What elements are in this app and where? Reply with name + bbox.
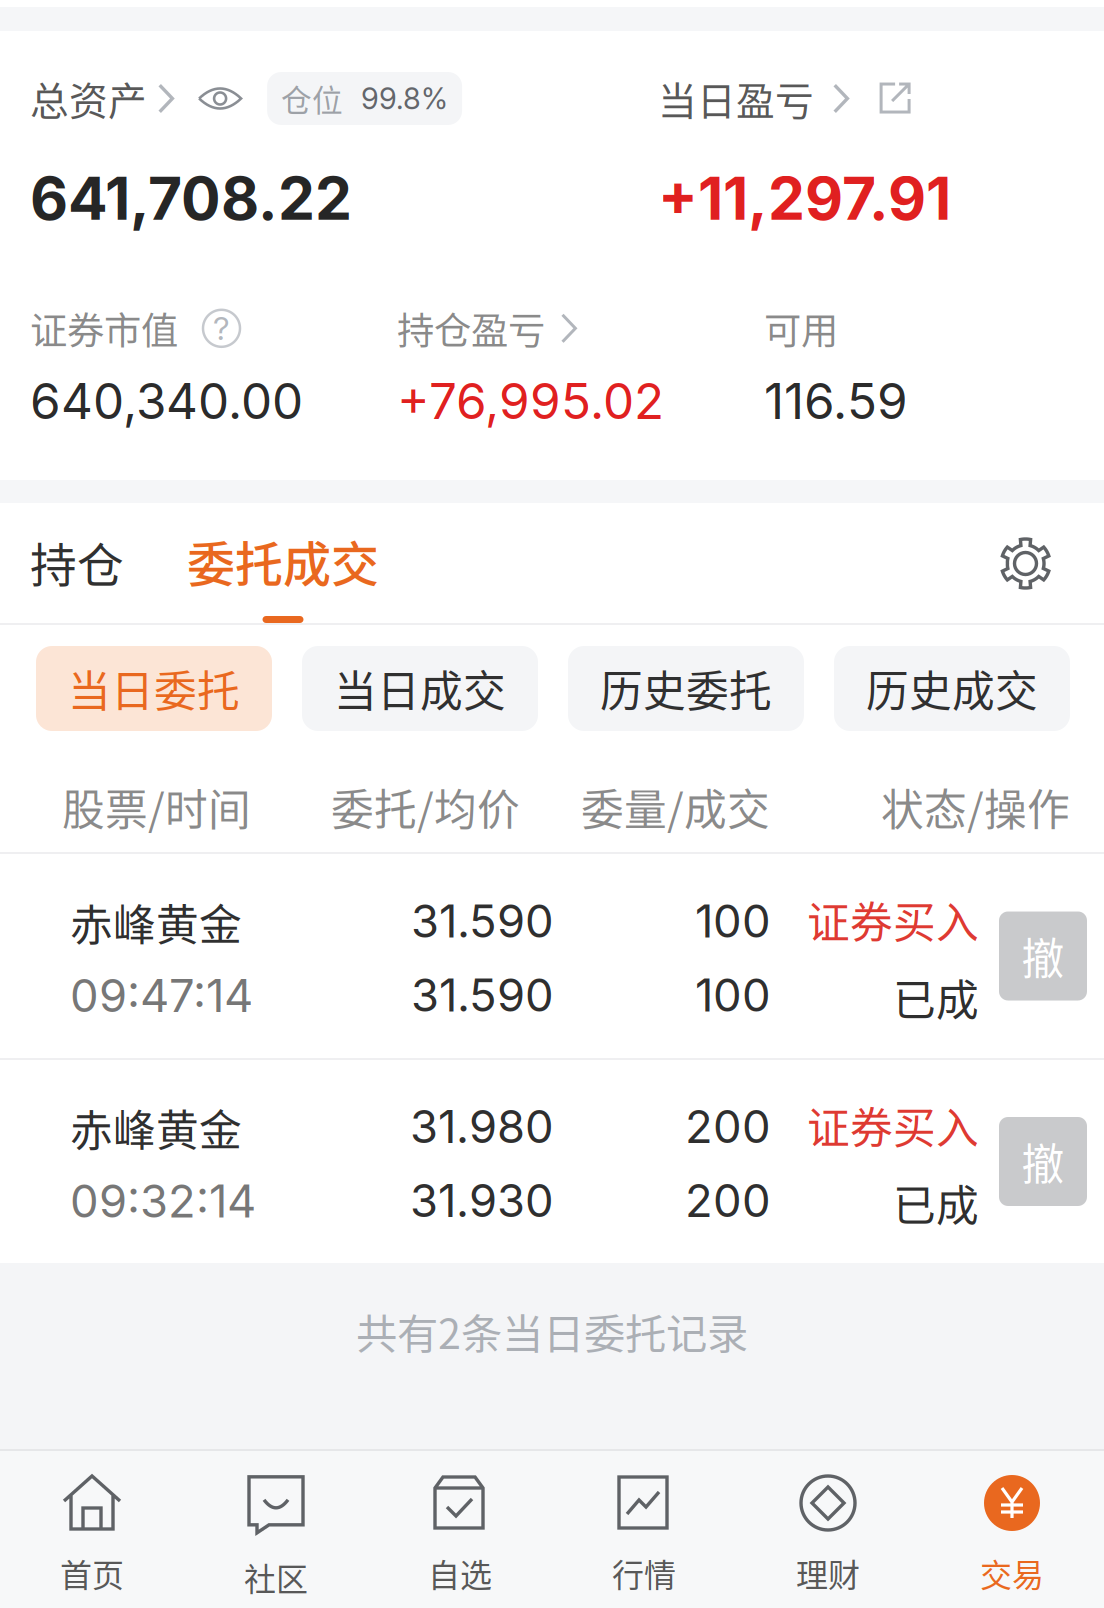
staticText: 赤峰黄金: [70, 891, 242, 953]
staticText: 共有2条当日委托记录: [356, 1301, 748, 1361]
button[interactable]: 自选: [368, 1451, 552, 1608]
staticText: 仓位: [281, 76, 343, 121]
staticText: 持仓: [30, 528, 124, 596]
staticText: 历史委托: [600, 658, 772, 719]
staticText: 自选: [428, 1550, 492, 1596]
button[interactable]: 社区: [184, 1451, 368, 1608]
staticText: +11,297.91: [658, 163, 951, 234]
button[interactable]: 行情: [552, 1451, 736, 1608]
button[interactable]: 委托成交: [187, 503, 379, 623]
button[interactable]: 当日委托: [36, 646, 272, 731]
staticText: 委托/均价: [331, 776, 520, 838]
staticText: 116.59: [764, 371, 908, 431]
staticText: 交易: [980, 1550, 1044, 1596]
staticText: 证券市值: [30, 301, 178, 355]
staticText: 100: [695, 967, 771, 1022]
staticText: 撤: [1021, 925, 1064, 987]
button[interactable]: 当日成交: [302, 646, 538, 731]
staticText: ?: [213, 309, 230, 348]
button[interactable]: 持仓: [30, 503, 124, 623]
staticText: 09:32:14: [70, 1173, 256, 1228]
staticText: 行情: [612, 1550, 676, 1596]
staticText: 已成: [893, 966, 979, 1028]
button[interactable]: Open daily P/L detail: [877, 80, 912, 117]
staticText: 31.980: [410, 1099, 554, 1154]
staticText: 状态/操作: [881, 776, 1070, 838]
button[interactable]: 仓位: [267, 72, 462, 125]
staticText: 委托成交: [187, 526, 379, 595]
staticText: 证券买入: [807, 889, 979, 950]
staticText: 赤峰黄金: [70, 1097, 242, 1158]
staticText: 641,708.22: [30, 163, 352, 234]
button[interactable]: Settings: [999, 537, 1052, 590]
button[interactable]: 历史成交: [834, 646, 1070, 731]
button[interactable]: 撤: [999, 1117, 1087, 1206]
staticText: 可用: [764, 301, 838, 355]
staticText: 理财: [796, 1550, 860, 1596]
staticText: 股票/时间: [62, 776, 251, 838]
button[interactable]: 历史委托: [568, 646, 804, 731]
staticText: 31.930: [410, 1173, 554, 1228]
staticText: 已成: [893, 1172, 979, 1234]
staticText: 撤: [1021, 1131, 1064, 1192]
button[interactable]: 撤: [999, 911, 1087, 1000]
staticText: 历史成交: [866, 658, 1038, 719]
button[interactable]: 交易: [920, 1451, 1104, 1608]
staticText: 640,340.00: [30, 371, 303, 431]
staticText: 100: [695, 894, 771, 948]
staticText: 当日成交: [334, 658, 506, 719]
staticText: 当日盈亏: [658, 70, 814, 126]
staticText: 200: [685, 1173, 771, 1228]
button[interactable]: Toggle balance visibility: [197, 81, 243, 115]
button[interactable]: 理财: [736, 1451, 920, 1608]
staticText: 当日委托: [68, 658, 240, 719]
staticText: 31.590: [411, 894, 554, 948]
button[interactable]: 总资产: [30, 72, 174, 125]
staticText: +76,995.02: [397, 371, 664, 431]
staticText: 委量/成交: [581, 776, 770, 838]
staticText: 总资产: [30, 70, 147, 126]
staticText: 社区: [244, 1554, 308, 1600]
staticText: 首页: [60, 1550, 124, 1596]
staticText: 持仓盈亏: [397, 301, 545, 355]
staticText: 09:47:14: [70, 968, 253, 1023]
staticText: 99.8%: [361, 81, 448, 116]
button[interactable]: 首页: [0, 1451, 184, 1608]
staticText: 200: [685, 1099, 771, 1154]
button[interactable]: 当日盈亏: [658, 72, 849, 125]
staticText: 31.590: [411, 967, 554, 1022]
staticText: 证券买入: [807, 1094, 979, 1156]
